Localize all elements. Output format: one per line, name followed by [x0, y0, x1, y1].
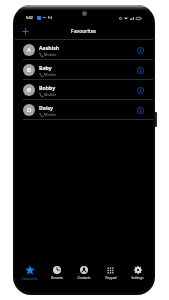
button[interactable]: B — [15, 80, 153, 100]
staticText: Aashish — [39, 44, 60, 51]
button[interactable]: Recents — [43, 261, 70, 285]
button[interactable]: Contacts — [70, 261, 97, 285]
staticText: Favourites — [71, 28, 97, 35]
button[interactable]: Keypad — [97, 261, 124, 285]
staticText: Mobile — [44, 72, 57, 77]
button[interactable]: B — [15, 60, 153, 80]
staticText: Recents — [51, 276, 63, 280]
button[interactable]: A — [15, 40, 153, 60]
staticText: Settings — [131, 276, 144, 280]
staticText: D — [27, 106, 32, 114]
staticText: Daisy — [39, 104, 54, 111]
staticText: 5:52 — [26, 15, 33, 20]
staticText: B — [27, 66, 31, 74]
button[interactable]: Contact details — [134, 44, 147, 57]
staticText: Keypad — [105, 276, 117, 280]
button[interactable]: Add contact — [19, 25, 32, 38]
staticText: Mobile — [44, 112, 57, 117]
staticText: Mobile — [44, 52, 57, 57]
button[interactable]: Contact details — [134, 84, 147, 97]
button[interactable]: Favourites — [17, 261, 43, 285]
button[interactable]: D — [15, 100, 153, 120]
button[interactable]: Settings — [124, 261, 151, 285]
button[interactable]: Contact details — [134, 104, 147, 117]
staticText: Bobby — [39, 84, 56, 91]
staticText: A — [27, 46, 31, 54]
button[interactable]: Contact details — [134, 64, 147, 77]
staticText: Contacts — [77, 276, 91, 280]
staticText: Baby — [39, 64, 52, 71]
staticText: B — [27, 86, 31, 94]
staticText: Mobile — [44, 92, 57, 97]
staticText: Favourites — [22, 277, 38, 281]
